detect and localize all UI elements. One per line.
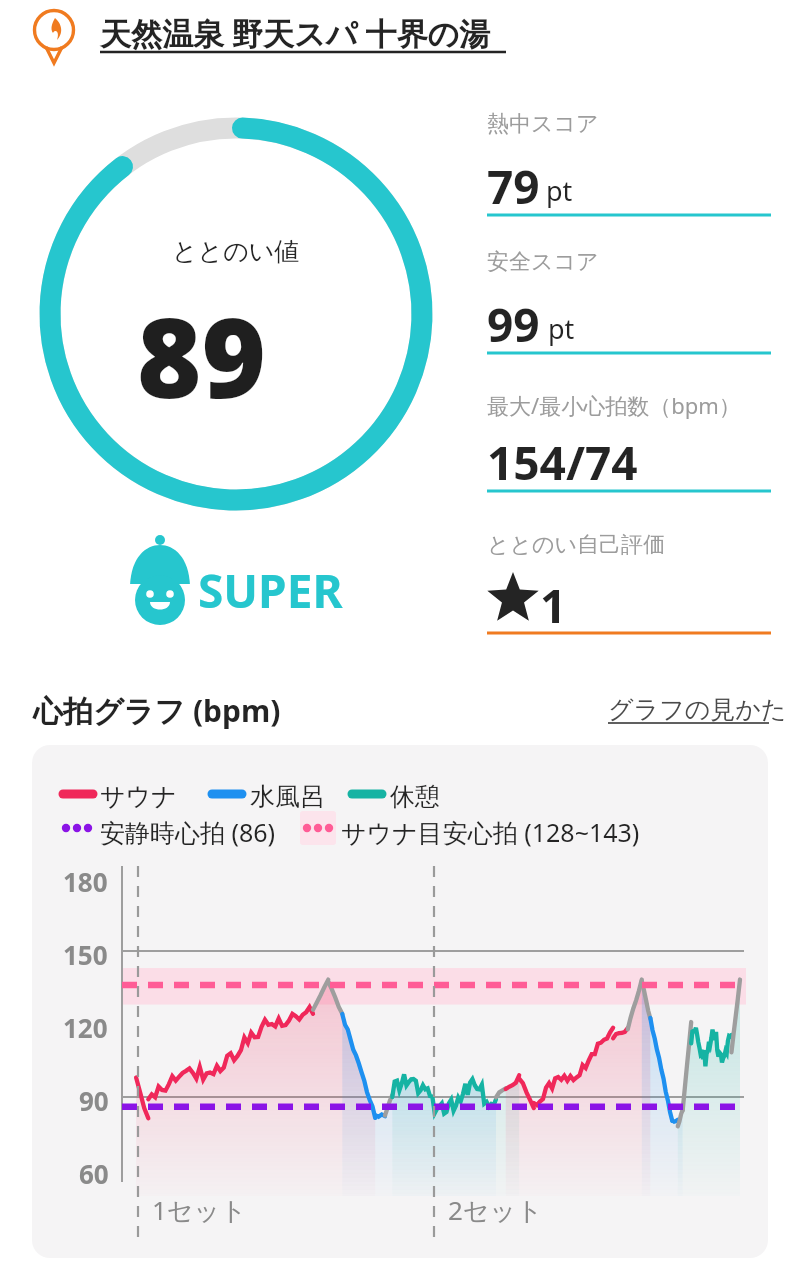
- staticText: 安静時心拍 (86): [100, 815, 276, 849]
- staticText: 90: [79, 1083, 109, 1118]
- staticText: 1セット: [152, 1192, 247, 1228]
- staticText: 120: [63, 1010, 108, 1045]
- staticText: 150: [63, 937, 108, 972]
- staticText: 心拍グラフ (bpm): [33, 690, 281, 731]
- staticText: pt: [546, 172, 573, 209]
- button[interactable]: 熱中スコア 79 pt: [487, 104, 772, 216]
- staticText: pt: [548, 310, 575, 347]
- staticText: SUPER: [198, 559, 343, 622]
- staticText: ととのい値: [172, 236, 300, 267]
- staticText: 安全スコア: [487, 248, 599, 276]
- staticText: 154/74: [487, 431, 638, 494]
- button[interactable]: 最大/最小心拍数 154/74: [487, 380, 772, 492]
- staticText: 休憩: [390, 781, 440, 812]
- staticText: 水風呂: [250, 781, 325, 812]
- staticText: グラフの見かた: [608, 694, 787, 725]
- staticText: 180: [63, 864, 108, 899]
- button[interactable]: 天然温泉 野天スパ 十界の湯: [24, 6, 514, 64]
- button[interactable]: ととのい値 89 SUPER: [36, 114, 436, 514]
- staticText: 最大/最小心拍数（bpm）: [487, 390, 741, 420]
- staticText: 2セット: [448, 1192, 543, 1228]
- staticText: ととのい自己評価: [487, 531, 666, 559]
- staticText: サウナ: [100, 781, 177, 812]
- staticText: 1: [540, 574, 567, 637]
- button[interactable]: 心拍グラフ: [32, 745, 768, 1258]
- staticText: サウナ目安心拍 (128~143): [341, 815, 640, 849]
- button[interactable]: 安全スコア 99 pt: [487, 242, 772, 354]
- staticText: 天然温泉 野天スパ 十界の湯: [100, 12, 491, 54]
- staticText: 99: [487, 293, 540, 356]
- staticText: 89: [137, 280, 266, 430]
- staticText: 79: [487, 155, 540, 218]
- button[interactable]: グラフの見かた: [600, 686, 772, 730]
- staticText: 60: [79, 1156, 109, 1191]
- button[interactable]: ととのい自己評価 星1: [487, 522, 772, 634]
- staticText: 熱中スコア: [487, 110, 599, 138]
